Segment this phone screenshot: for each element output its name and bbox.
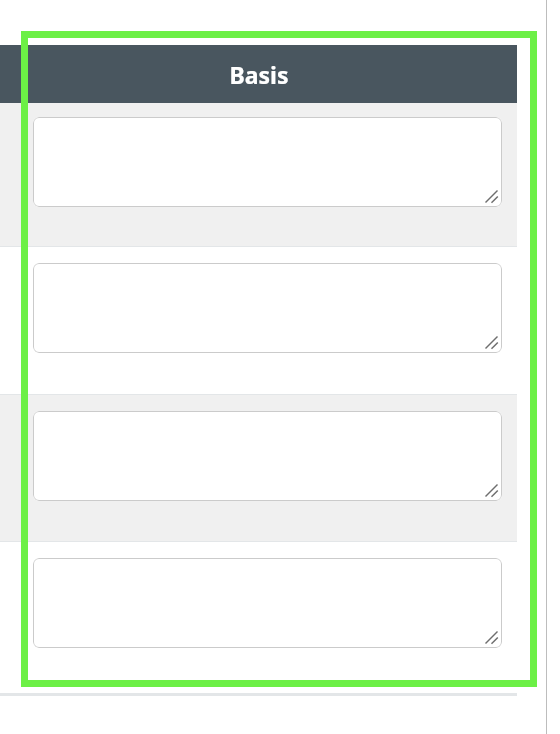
staticText: Basis	[229, 59, 289, 90]
button[interactable]: Text input field	[33, 263, 502, 353]
button[interactable]: Basis	[0, 45, 517, 103]
button[interactable]: Text input field	[33, 558, 502, 648]
button[interactable]: Text input field	[33, 411, 502, 501]
button[interactable]: Text input field	[33, 117, 502, 207]
